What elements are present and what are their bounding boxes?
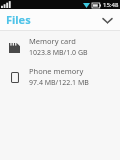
staticText: 97.4 MB/122.1 MB: [29, 78, 89, 88]
staticText: Memory card: [29, 36, 76, 46]
staticText: Files: [6, 12, 31, 27]
staticText: 15:48: [103, 1, 119, 9]
button[interactable]: Expand storage list: [98, 11, 116, 29]
staticText: 1023.8 MB/1.0 GB: [29, 48, 88, 58]
button[interactable]: Memory card: [0, 36, 120, 58]
button[interactable]: Phone memory: [0, 66, 120, 88]
staticText: Phone memory: [29, 66, 84, 76]
